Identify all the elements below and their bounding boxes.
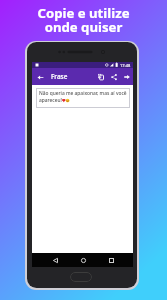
button[interactable]: Home button [70,272,92,282]
button[interactable]: Back [34,71,46,83]
button[interactable]: Copy [95,71,107,83]
button[interactable]: Recents [105,254,117,266]
button[interactable]: Home [77,254,89,266]
staticText: Copie e utilize onde quiser [0,4,167,36]
staticText: Não queria me apaixonar, mas aí você apa… [39,90,127,104]
button[interactable]: Não queria me apaixonar, mas aí você apa… [36,88,130,108]
staticText: 17:48 [120,63,131,68]
button[interactable]: Back [49,254,61,266]
button[interactable]: Send [121,71,133,83]
button[interactable]: Share [108,71,120,83]
staticText: Frase [51,72,68,81]
